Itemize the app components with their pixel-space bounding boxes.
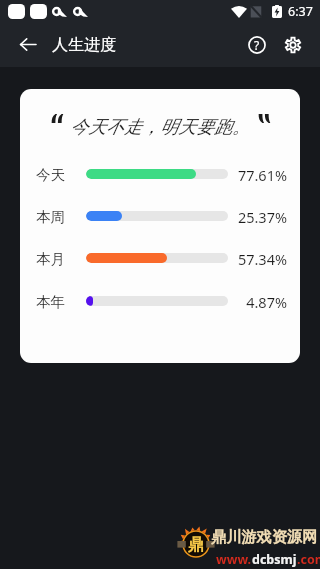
staticText: 今天不走，明天要跑。 bbox=[70, 116, 250, 139]
staticText: ? bbox=[254, 37, 260, 53]
staticText: 本年 bbox=[36, 293, 65, 311]
staticText: www. bbox=[216, 551, 252, 568]
button[interactable]: Help bbox=[239, 22, 275, 67]
staticText: 鼎 bbox=[188, 535, 204, 555]
staticText: 6:37 bbox=[288, 3, 313, 20]
staticText: 57.34% bbox=[227, 249, 287, 269]
staticText: 人生进度 bbox=[52, 35, 116, 55]
staticText: 25.37% bbox=[227, 207, 287, 227]
staticText: 今天 bbox=[36, 166, 65, 184]
staticText: 本月 bbox=[36, 250, 65, 268]
staticText: 4.87% bbox=[227, 292, 287, 312]
staticText: dcbsmj bbox=[252, 551, 297, 568]
button[interactable]: Settings bbox=[275, 22, 311, 67]
staticText: .com bbox=[297, 551, 320, 568]
staticText: 77.61% bbox=[227, 165, 287, 185]
staticText: 本周 bbox=[36, 208, 65, 226]
staticText: 鼎川游戏资源网 bbox=[211, 527, 318, 546]
button[interactable]: Back bbox=[0, 22, 44, 67]
